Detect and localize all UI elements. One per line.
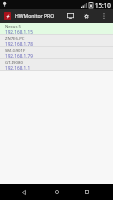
staticText: 192.168.1.78 (5, 41, 33, 47)
button[interactable]: SM-G901F (0, 47, 113, 59)
button[interactable]: Settings (80, 9, 93, 23)
button[interactable]: Monitors (64, 9, 77, 23)
staticText: HWMonitor PRO (15, 13, 55, 20)
button[interactable]: ZN7E6-PC (0, 35, 113, 47)
staticText: 15:10 (95, 1, 111, 9)
button[interactable]: Recent apps (80, 184, 94, 200)
staticText: GT-I9080 (5, 59, 23, 65)
staticText: Nexus 5 (5, 23, 21, 29)
button[interactable]: More options (98, 9, 109, 23)
button[interactable]: Back (17, 184, 31, 200)
button[interactable]: GT-I9080 (0, 59, 113, 71)
staticText: 192.168.1.15 (5, 29, 33, 35)
staticText: 192.168.1.79 (5, 53, 33, 59)
button[interactable]: Home (50, 184, 64, 200)
staticText: 192.168.1.1 (5, 65, 31, 71)
button[interactable]: Nexus 5 (0, 23, 113, 35)
staticText: SM-G901F (5, 47, 26, 53)
staticText: ZN7E6-PC (5, 35, 25, 41)
